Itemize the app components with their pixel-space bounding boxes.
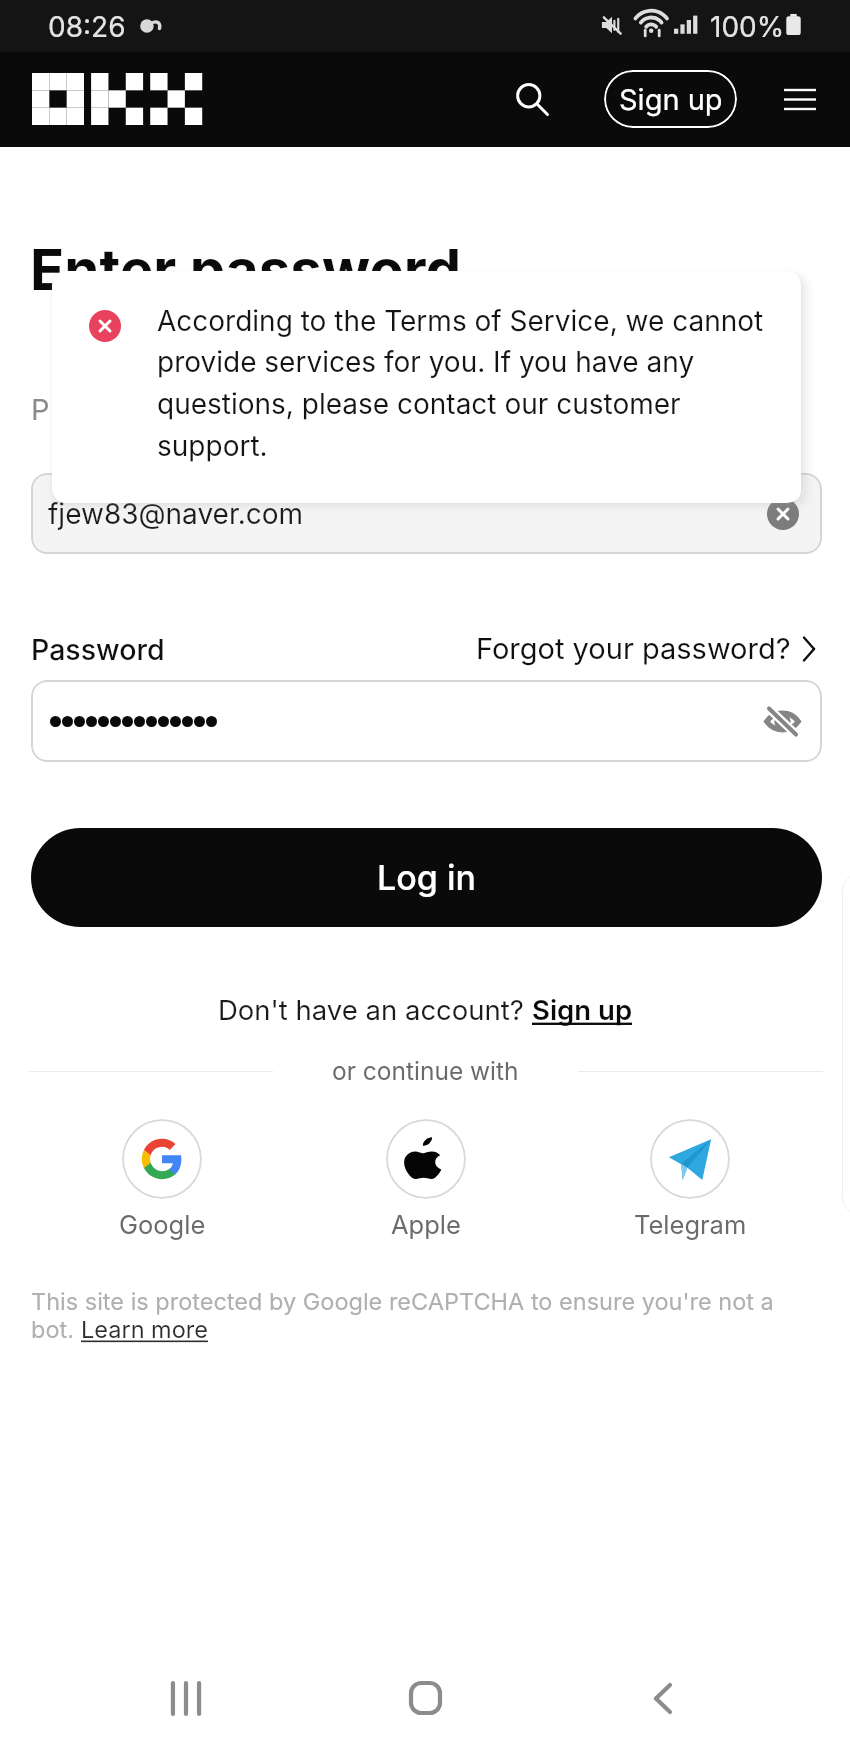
button[interactable]: OKX home — [32, 73, 199, 125]
button[interactable]: Back — [623, 1658, 703, 1738]
button[interactable]: Menu — [770, 69, 830, 129]
staticText: fjew83@naver.com — [48, 497, 304, 531]
button[interactable]: Show password — [758, 697, 806, 745]
button[interactable]: Recent apps — [146, 1658, 226, 1738]
staticText: Telegram — [634, 1209, 747, 1240]
staticText: 08:26 — [48, 10, 126, 44]
staticText: Don't have an account? — [218, 993, 532, 1026]
staticText: Sign up — [619, 82, 723, 117]
button[interactable]: Log in — [31, 828, 822, 927]
button[interactable]: Forgot your password? — [476, 631, 816, 666]
staticText: Google — [119, 1209, 206, 1240]
button[interactable]: Clear — [767, 498, 799, 530]
button[interactable] — [122, 1119, 202, 1199]
staticText: Sign up — [532, 993, 633, 1026]
button[interactable]: Learn more — [81, 1315, 208, 1343]
staticText: Learn more — [81, 1315, 208, 1343]
staticText: This site is protected by Google reCAPTC… — [31, 1287, 774, 1315]
staticText: Enter password — [30, 235, 462, 303]
button[interactable] — [650, 1119, 730, 1199]
staticText: P — [31, 392, 50, 427]
staticText: According to the Terms of Service, we ca… — [157, 304, 777, 463]
staticText: Password — [31, 632, 165, 666]
button[interactable]: Sign up — [604, 70, 737, 128]
button[interactable]: Sign up — [532, 993, 633, 1026]
button[interactable] — [386, 1119, 466, 1199]
button[interactable]: According to the Terms of Service, we ca… — [52, 271, 801, 503]
staticText: Forgot your password? — [476, 631, 791, 666]
button[interactable]: Home — [385, 1658, 465, 1738]
staticText: Log in — [377, 857, 476, 898]
staticText: bot. — [31, 1315, 81, 1343]
staticText: 100% — [710, 10, 785, 44]
staticText: or continue with — [332, 1056, 519, 1086]
button[interactable]: Show password — [31, 680, 822, 762]
button[interactable]: Search — [502, 69, 562, 129]
staticText: Apple — [391, 1209, 461, 1240]
button[interactable]: fjew83@naver.com — [31, 473, 822, 554]
